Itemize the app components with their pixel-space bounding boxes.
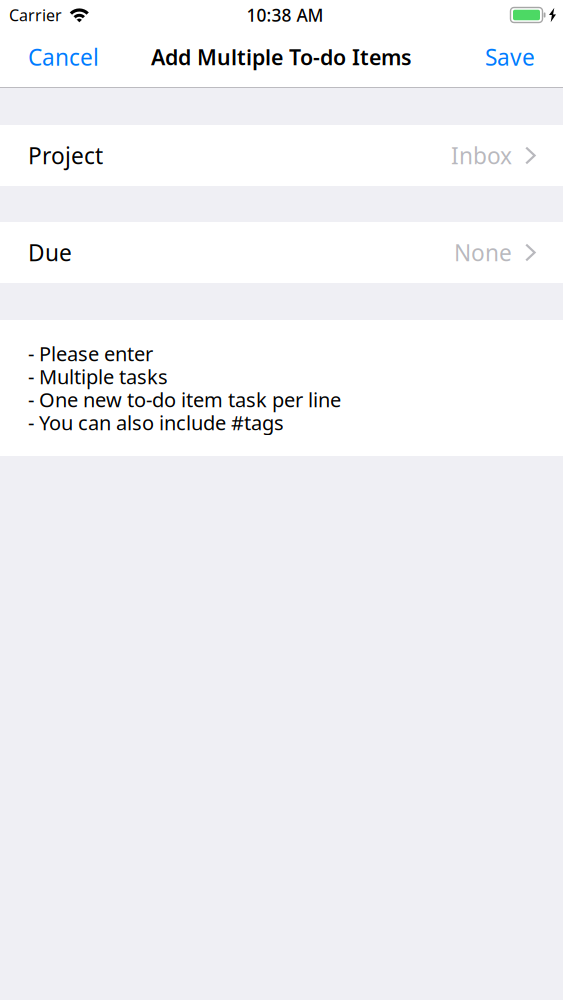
button[interactable]: Cancel: [18, 35, 109, 79]
button[interactable]: Due: [0, 222, 563, 283]
button[interactable]: - Please enter: [0, 320, 563, 456]
staticText: - Multiple tasks: [28, 363, 168, 390]
staticText: Save: [485, 42, 535, 72]
staticText: 10:38 AM: [246, 3, 323, 26]
staticText: Project: [28, 140, 103, 170]
button[interactable]: Project: [0, 125, 563, 186]
staticText: Due: [28, 237, 72, 267]
staticText: Add Multiple To-do Items: [151, 43, 412, 71]
button[interactable]: Save: [475, 35, 545, 79]
staticText: - You can also include #tags: [28, 409, 284, 436]
staticText: - One new to-do item task per line: [28, 386, 341, 413]
staticText: None: [454, 237, 512, 267]
staticText: Cancel: [28, 42, 99, 72]
staticText: Inbox: [451, 140, 512, 170]
staticText: Carrier: [9, 4, 62, 26]
staticText: - Please enter: [28, 340, 153, 367]
